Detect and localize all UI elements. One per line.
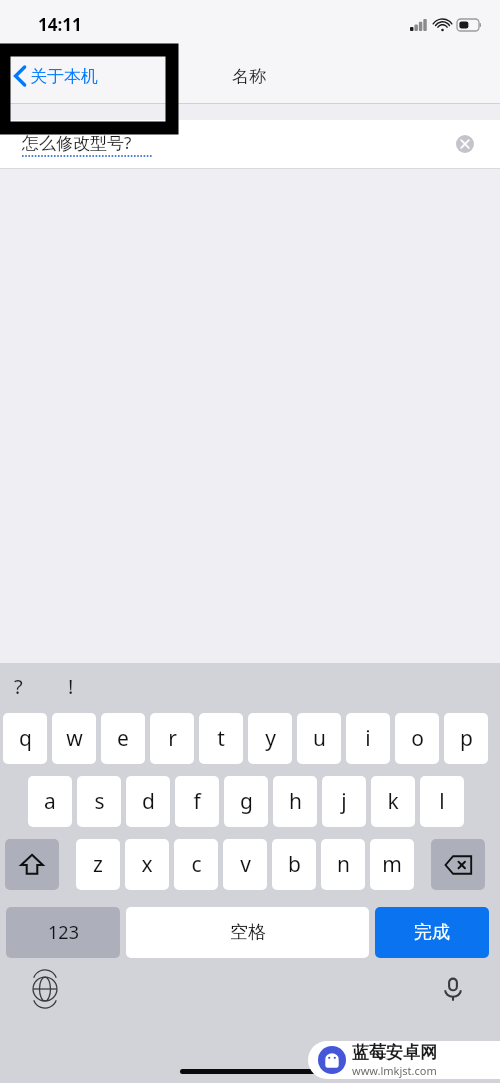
staticText: f: [193, 787, 201, 816]
button[interactable]: w: [52, 713, 96, 764]
staticText: 关于本机: [30, 66, 98, 87]
button[interactable]: Clear text: [456, 135, 474, 153]
button[interactable]: Delete: [431, 839, 485, 890]
staticText: c: [191, 850, 202, 879]
button[interactable]: ?: [14, 673, 23, 700]
button[interactable]: f: [175, 776, 219, 827]
staticText: m: [382, 850, 402, 879]
staticText: d: [142, 787, 155, 816]
staticText: 蓝莓安卓网: [352, 1042, 437, 1063]
staticText: 怎么修改型号?: [22, 131, 132, 154]
button[interactable]: d: [126, 776, 170, 827]
button[interactable]: a: [28, 776, 72, 827]
staticText: w: [66, 724, 83, 753]
staticText: 完成: [414, 921, 450, 944]
button[interactable]: r: [150, 713, 194, 764]
button[interactable]: c: [174, 839, 218, 890]
staticText: 14:11: [38, 13, 82, 36]
button[interactable]: t: [199, 713, 243, 764]
staticText: a: [44, 787, 56, 816]
staticText: g: [240, 787, 253, 816]
button[interactable]: i: [346, 713, 390, 764]
staticText: q: [19, 724, 32, 753]
button[interactable]: n: [321, 839, 365, 890]
staticText: b: [288, 850, 301, 879]
staticText: e: [117, 724, 129, 753]
staticText: n: [337, 850, 350, 879]
button[interactable]: 怎么修改型号?: [0, 120, 500, 168]
button[interactable]: j: [322, 776, 366, 827]
staticText: s: [94, 787, 105, 816]
button[interactable]: k: [371, 776, 415, 827]
staticText: l: [439, 787, 445, 816]
staticText: z: [93, 850, 103, 879]
button[interactable]: e: [101, 713, 145, 764]
button[interactable]: z: [76, 839, 120, 890]
staticText: 123: [48, 920, 79, 945]
button[interactable]: 空格: [126, 907, 369, 958]
staticText: h: [289, 787, 302, 816]
staticText: o: [411, 724, 424, 753]
button[interactable]: y: [248, 713, 292, 764]
staticText: v: [240, 850, 251, 879]
staticText: i: [365, 724, 371, 753]
button[interactable]: g: [224, 776, 268, 827]
button[interactable]: m: [370, 839, 414, 890]
staticText: k: [387, 787, 399, 816]
staticText: x: [141, 850, 153, 879]
button[interactable]: s: [77, 776, 121, 827]
staticText: j: [341, 787, 347, 816]
button[interactable]: Switch keyboard: [32, 976, 58, 1002]
button[interactable]: !: [68, 673, 74, 700]
button[interactable]: o: [395, 713, 439, 764]
staticText: u: [313, 724, 326, 753]
button[interactable]: x: [125, 839, 169, 890]
button[interactable]: u: [297, 713, 341, 764]
button[interactable]: Shift: [5, 839, 59, 890]
staticText: 空格: [230, 921, 266, 944]
button[interactable]: 关于本机: [14, 61, 106, 91]
button[interactable]: h: [273, 776, 317, 827]
staticText: t: [217, 724, 225, 753]
staticText: 名称: [232, 66, 266, 87]
button[interactable]: v: [223, 839, 267, 890]
button[interactable]: p: [444, 713, 488, 764]
button[interactable]: 123: [6, 907, 120, 958]
staticText: p: [460, 724, 473, 753]
button[interactable]: q: [3, 713, 47, 764]
button[interactable]: 完成: [375, 907, 489, 958]
staticText: www.lmkjst.com: [352, 1063, 437, 1078]
button[interactable]: b: [272, 839, 316, 890]
button[interactable]: l: [420, 776, 464, 827]
staticText: r: [168, 724, 177, 753]
staticText: y: [265, 724, 276, 753]
button[interactable]: Dictation: [440, 976, 466, 1002]
